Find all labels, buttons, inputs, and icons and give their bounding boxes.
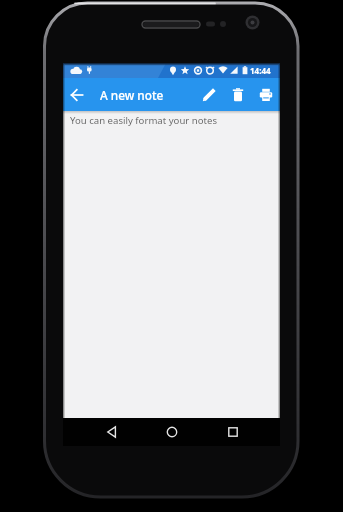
button[interactable] (63, 78, 91, 111)
button[interactable] (252, 78, 280, 111)
button[interactable] (156, 418, 187, 446)
button[interactable]: You can easily format your notes (63, 111, 280, 418)
staticText: 14:44 (250, 65, 271, 76)
staticText: You can easily format your notes (70, 114, 217, 127)
button[interactable] (218, 418, 248, 446)
button[interactable] (194, 78, 223, 111)
button[interactable]: A new note (100, 87, 164, 103)
button[interactable] (223, 78, 252, 111)
button[interactable] (97, 418, 127, 446)
